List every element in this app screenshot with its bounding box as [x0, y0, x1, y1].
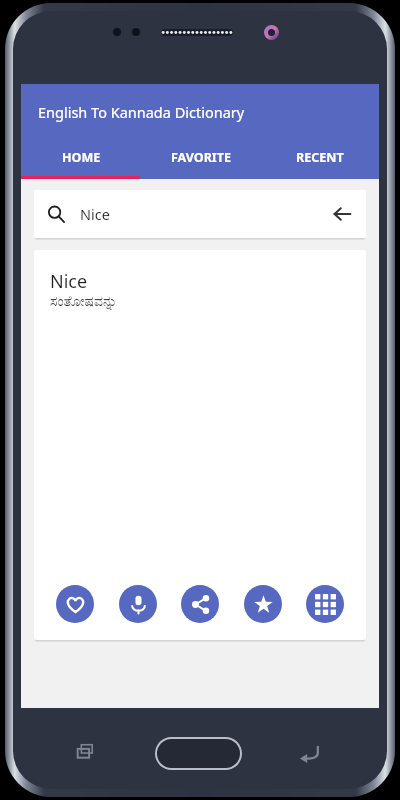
staticText: ಸಂತೋಷವನ್ನು [50, 295, 118, 309]
staticText: English To Kannada Dictionary [38, 102, 245, 122]
button[interactable]: Add to favorites [244, 585, 282, 623]
button[interactable]: RECENT [260, 139, 379, 176]
button[interactable]: Back [296, 739, 324, 767]
button[interactable]: Favorite [56, 585, 94, 623]
staticText: Nice [80, 204, 110, 224]
button[interactable]: Recent apps [73, 739, 99, 765]
staticText: Nice [50, 269, 88, 294]
button[interactable]: Pronounce [119, 585, 157, 623]
button[interactable]: Nice [34, 190, 366, 238]
staticText: HOME [62, 149, 101, 166]
button[interactable]: HOME [21, 139, 141, 176]
staticText: RECENT [296, 149, 344, 166]
button[interactable]: Home [155, 737, 242, 770]
button[interactable]: Clear search [332, 204, 352, 224]
staticText: FAVORITE [171, 149, 231, 166]
button[interactable]: Share [181, 585, 219, 623]
button[interactable]: More options [306, 585, 344, 623]
button[interactable]: FAVORITE [141, 139, 260, 176]
